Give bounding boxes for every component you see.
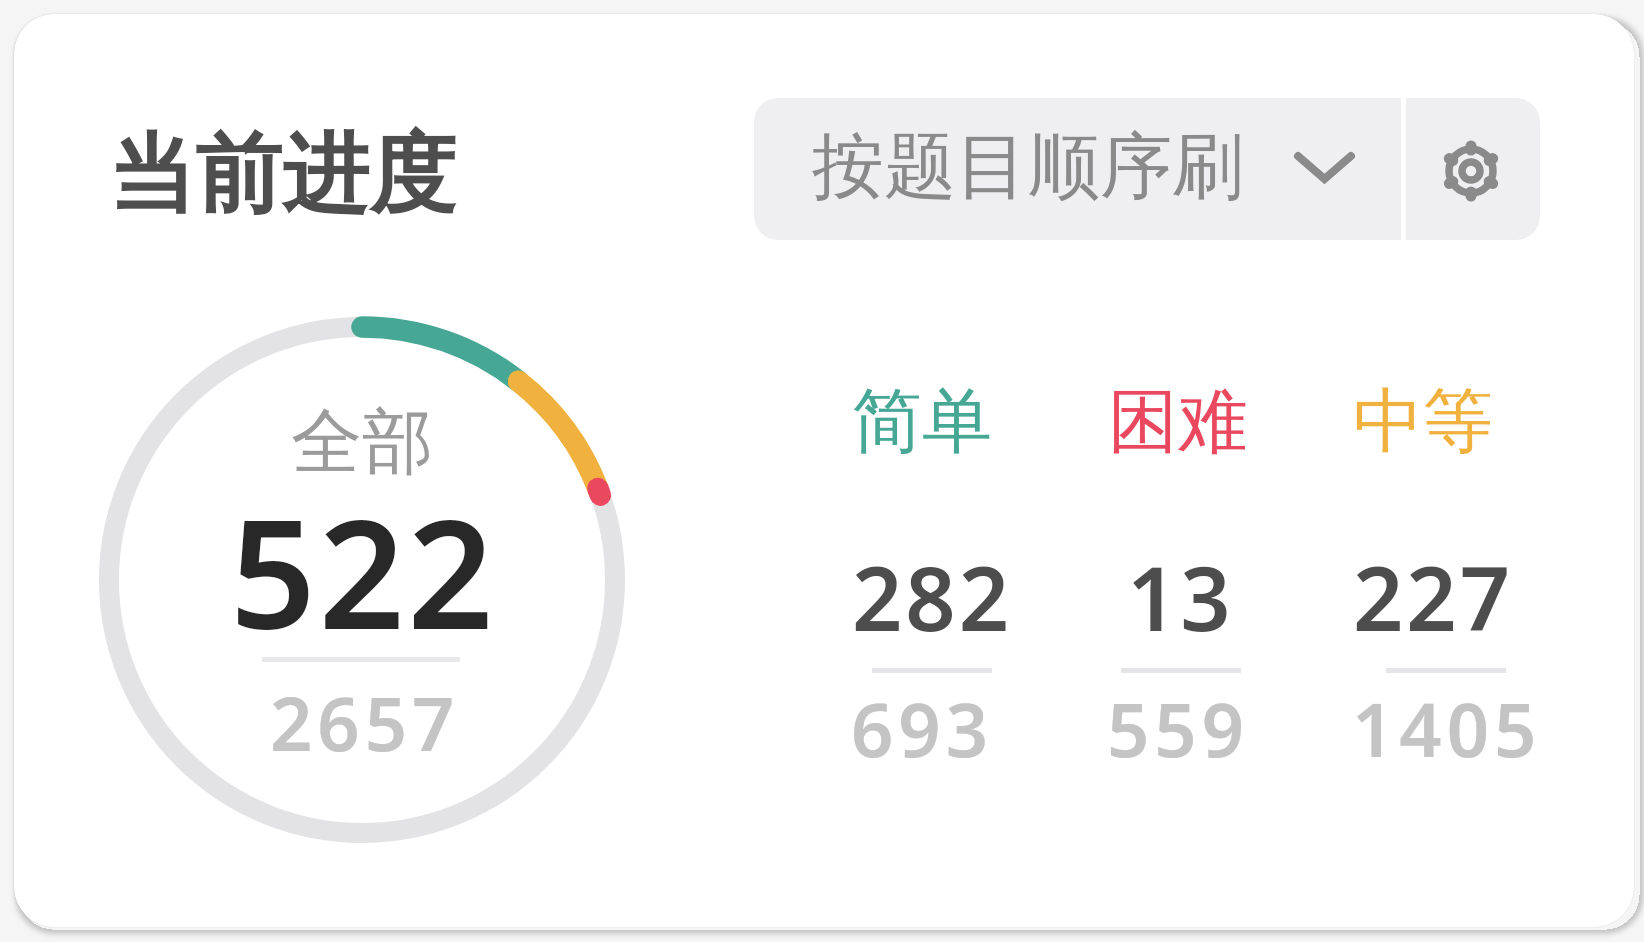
staticText: 227 [1353, 537, 1514, 657]
staticText: 693 [851, 678, 993, 778]
staticText: 1405 [1352, 678, 1542, 778]
button[interactable] [1406, 98, 1540, 240]
staticText: 困难 [1108, 378, 1248, 466]
staticText: 13 [1127, 537, 1234, 657]
staticText: 按题目顺序刷 [812, 122, 1244, 213]
staticText: 522 [230, 469, 497, 673]
staticText: 中等 [1353, 378, 1493, 466]
staticText: 简单 [852, 378, 992, 466]
staticText: 当前进度 [108, 120, 456, 230]
staticText: 559 [1107, 678, 1249, 778]
staticText: 282 [852, 537, 1013, 657]
staticText: 2657 [270, 672, 460, 773]
button[interactable] [754, 98, 1401, 240]
staticText: 全部 [291, 398, 433, 487]
